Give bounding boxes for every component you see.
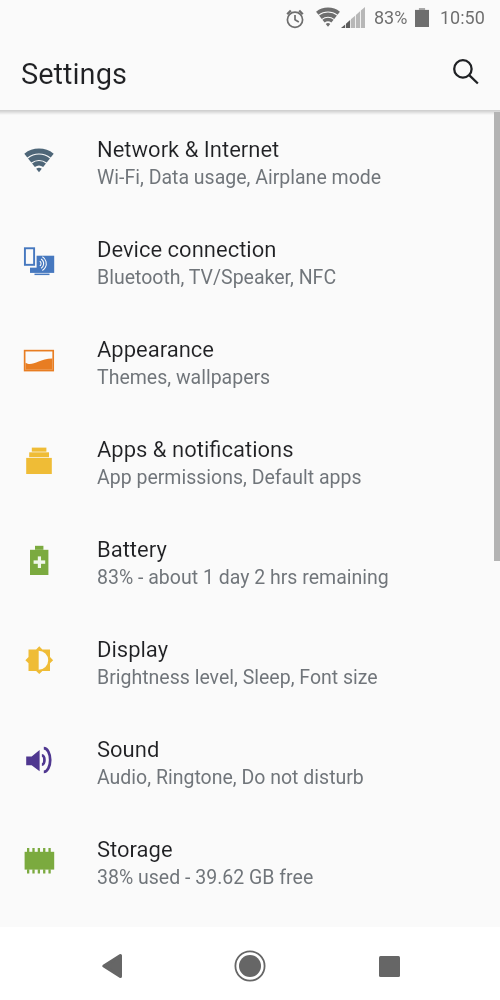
staticText: 83% - about 1 day 2 hrs remaining — [97, 566, 389, 589]
button[interactable]: Device connection — [0, 210, 500, 310]
button[interactable]: Sound — [0, 710, 500, 810]
button[interactable]: Home — [226, 942, 274, 990]
button[interactable]: Recents — [365, 942, 413, 990]
staticText: Themes, wallpapers — [97, 366, 271, 389]
button[interactable]: Search — [441, 51, 485, 95]
staticText: Bluetooth, TV/Speaker, NFC — [97, 266, 337, 289]
button[interactable]: Display — [0, 610, 500, 710]
staticText: 38% used - 39.62 GB free — [97, 866, 314, 889]
button[interactable]: Network & Internet — [0, 110, 500, 210]
staticText: Sound — [97, 737, 160, 763]
button[interactable]: Appearance — [0, 310, 500, 410]
button[interactable]: Back — [87, 942, 135, 990]
staticText: Appearance — [97, 337, 215, 363]
staticText: Device connection — [97, 237, 277, 263]
staticText: Wi-Fi, Data usage, Airplane mode — [97, 166, 382, 189]
staticText: Apps & notifications — [97, 437, 294, 463]
staticText: Audio, Ringtone, Do not disturb — [97, 766, 364, 789]
staticText: Display — [97, 637, 169, 663]
staticText: 83% — [374, 7, 408, 28]
button[interactable]: Storage — [0, 810, 500, 910]
staticText: Network & Internet — [97, 137, 280, 163]
staticText: Battery — [97, 537, 167, 563]
staticText: 10:50 — [440, 7, 485, 28]
staticText: Storage — [97, 837, 173, 863]
button[interactable]: Battery — [0, 510, 500, 610]
staticText: Settings — [21, 57, 127, 91]
staticText: Brightness level, Sleep, Font size — [97, 666, 378, 689]
button[interactable]: Apps & notifications — [0, 410, 500, 510]
staticText: App permissions, Default apps — [97, 466, 362, 489]
